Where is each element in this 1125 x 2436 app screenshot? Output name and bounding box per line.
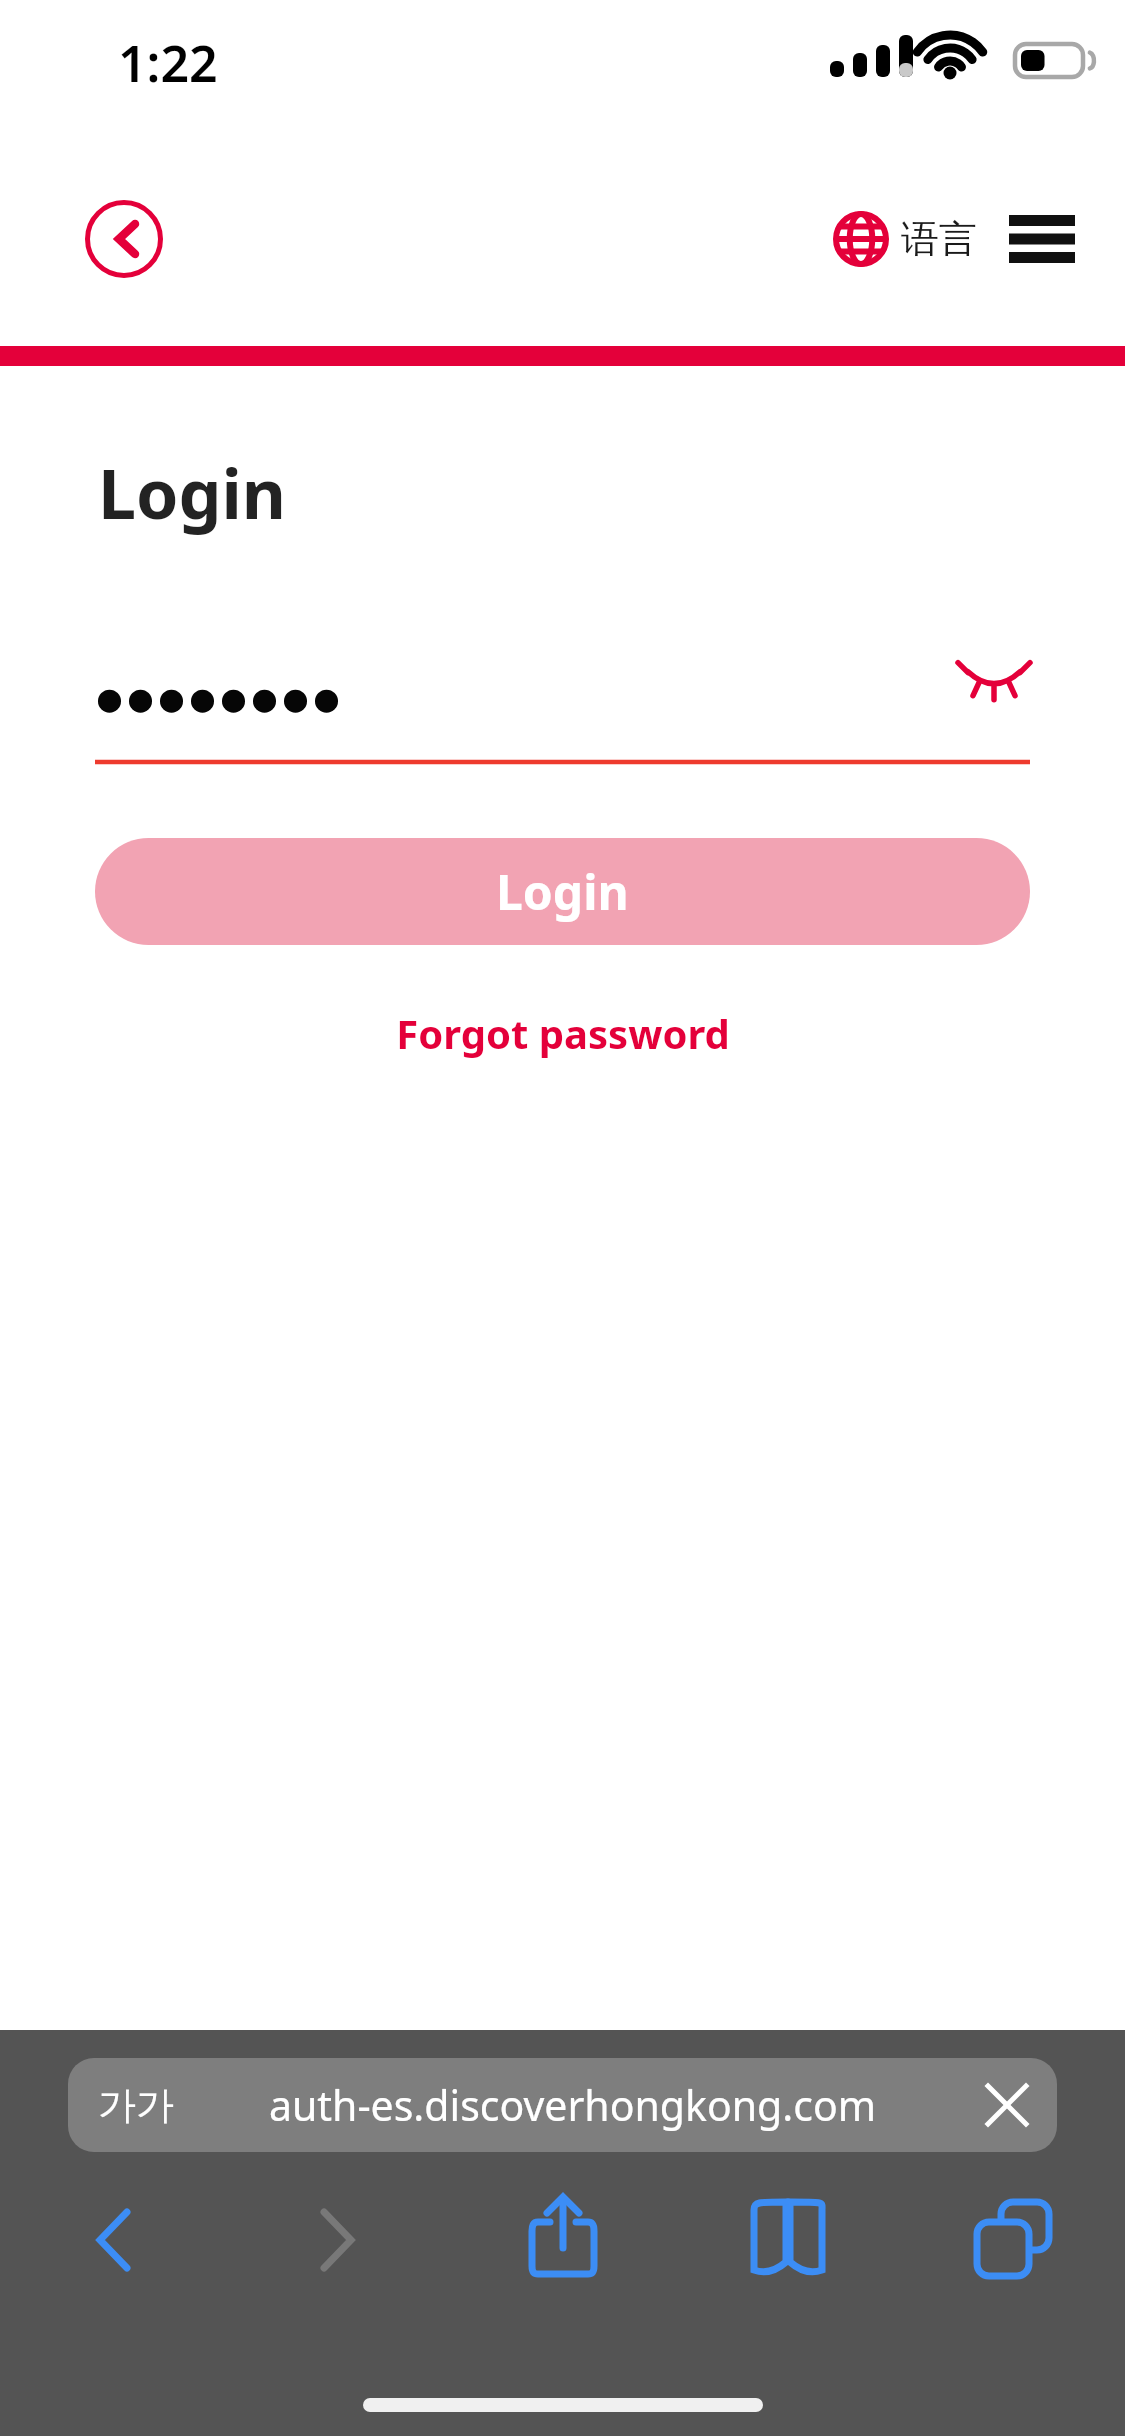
- button[interactable]: Forgot password: [380, 1000, 746, 1066]
- button[interactable]: Back: [0, 2190, 225, 2290]
- button[interactable]: Bookmarks: [675, 2190, 900, 2290]
- staticText: Login: [496, 859, 629, 924]
- button[interactable]: Forward: [225, 2190, 450, 2290]
- staticText: Login: [98, 446, 287, 539]
- button[interactable]: Tabs: [900, 2190, 1125, 2290]
- staticText: 1:22: [118, 29, 218, 97]
- button[interactable]: Share: [450, 2190, 675, 2290]
- staticText: auth-es.discoverhongkong.com: [174, 2077, 971, 2133]
- button[interactable]: Login: [95, 838, 1030, 945]
- staticText: 가가: [98, 2081, 174, 2129]
- button[interactable]: Stop loading: [971, 2069, 1043, 2141]
- button[interactable]: Show password: [95, 655, 1030, 765]
- button[interactable]: Menu: [1007, 208, 1077, 270]
- button[interactable]: 语言: [829, 203, 981, 275]
- button[interactable]: Show password: [958, 649, 1030, 707]
- button[interactable]: 가가: [68, 2058, 1057, 2152]
- staticText: 语言: [901, 215, 977, 263]
- staticText: Forgot password: [396, 1006, 730, 1060]
- button[interactable]: Back: [85, 200, 163, 278]
